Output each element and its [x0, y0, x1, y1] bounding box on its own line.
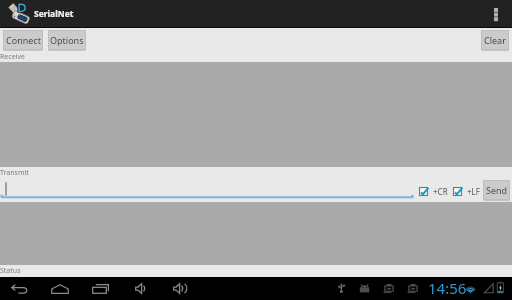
staticText: SerialNet [34, 8, 74, 20]
button[interactable]: Clear [481, 30, 509, 52]
button[interactable]: Back [0, 277, 40, 300]
staticText: Options [50, 34, 84, 46]
staticText: Send [486, 184, 508, 196]
button[interactable]: +CR [419, 186, 448, 197]
button[interactable]: Recent apps [80, 277, 120, 300]
staticText: +LF [467, 186, 480, 197]
staticText: 14:56 [428, 278, 467, 298]
button[interactable]: Options [48, 30, 86, 52]
button[interactable]: Volume down [120, 277, 160, 300]
button[interactable]: Connect [3, 30, 43, 52]
staticText: Clear [484, 34, 506, 46]
staticText: +CR [433, 186, 448, 197]
button[interactable]: More options [480, 1, 512, 28]
button[interactable]: Send [483, 180, 510, 202]
button[interactable]: +LF [453, 186, 480, 197]
staticText: Status [0, 266, 21, 276]
staticText: Receive [0, 52, 25, 62]
staticText: Connect [6, 34, 41, 46]
staticText: Transmit [0, 168, 29, 178]
button[interactable]: Home [40, 277, 80, 300]
button[interactable]: Volume up [160, 277, 200, 300]
